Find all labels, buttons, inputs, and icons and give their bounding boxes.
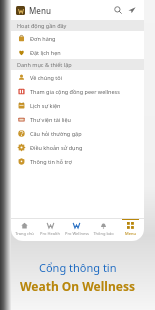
button[interactable]: Search — [111, 3, 125, 17]
staticText: Đơn hàng — [30, 35, 56, 42]
button[interactable]: Share — [125, 3, 139, 17]
button[interactable]: Menu — [117, 219, 144, 241]
staticText: Pro Wellness — [65, 231, 89, 236]
button[interactable]: Thông báo — [90, 219, 117, 241]
staticText: Đặt lịch hẹn — [30, 49, 61, 56]
button[interactable]: Pro Health — [37, 219, 63, 241]
staticText: Trang chủ — [15, 231, 34, 236]
staticText: Menu — [29, 5, 51, 16]
button[interactable]: Pro Wellness — [63, 219, 90, 241]
staticText: Cổng thông tin — [39, 260, 117, 275]
staticText: Thông báo — [93, 231, 114, 236]
button[interactable]: Đơn hàng — [11, 31, 144, 45]
staticText: Tham gia cộng đồng peer wellness — [30, 88, 120, 95]
button[interactable]: Điều khoản sử dụng — [11, 140, 144, 154]
button[interactable]: Trang chủ — [11, 219, 37, 241]
button[interactable]: Tham gia cộng đồng peer wellness — [11, 84, 144, 98]
button[interactable]: Thông tin hỗ trợ — [11, 154, 144, 168]
button[interactable]: Thư viện tài liệu — [11, 112, 144, 126]
button[interactable]: Câu hỏi thường gặp — [11, 126, 144, 140]
button[interactable]: Lịch sự kiện — [11, 98, 144, 112]
staticText: Weath On Wellness — [20, 278, 135, 294]
staticText: Menu — [125, 231, 136, 236]
staticText: Thư viện tài liệu — [30, 116, 71, 123]
staticText: Câu hỏi thường gặp — [30, 130, 82, 137]
staticText: Điều khoản sử dụng — [30, 144, 83, 151]
staticText: Danh mục & thiết lập — [17, 61, 72, 68]
button[interactable]: Logo — [16, 6, 25, 15]
button[interactable]: Về chúng tôi — [11, 70, 144, 84]
button[interactable]: Đặt lịch hẹn — [11, 45, 144, 59]
staticText: Thông tin hỗ trợ — [30, 158, 72, 165]
staticText: Hoạt động gần đây — [17, 22, 67, 29]
staticText: Về chúng tôi — [30, 74, 63, 81]
staticText: Lịch sự kiện — [30, 102, 61, 109]
staticText: Pro Health — [40, 231, 60, 236]
